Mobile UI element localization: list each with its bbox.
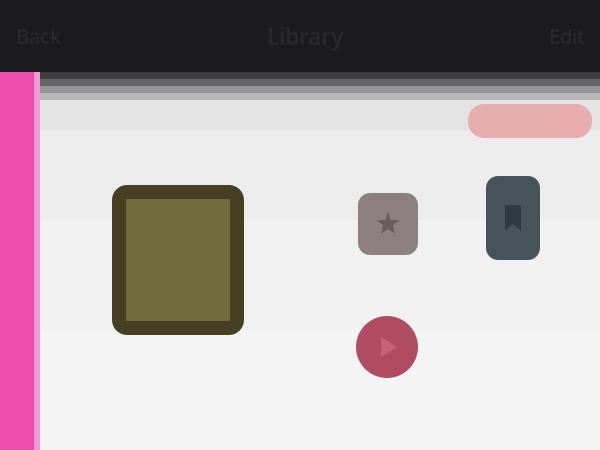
staticText: Back [16,23,61,49]
button[interactable]: Edit [533,13,600,59]
staticText: Edit [549,23,584,49]
button[interactable]: Bookmark [486,176,540,260]
button[interactable]: Back [0,13,77,59]
button[interactable]: Play [356,316,418,378]
button[interactable]: New [468,104,592,138]
staticText: Library [267,21,343,51]
button[interactable]: Rate [358,193,418,255]
